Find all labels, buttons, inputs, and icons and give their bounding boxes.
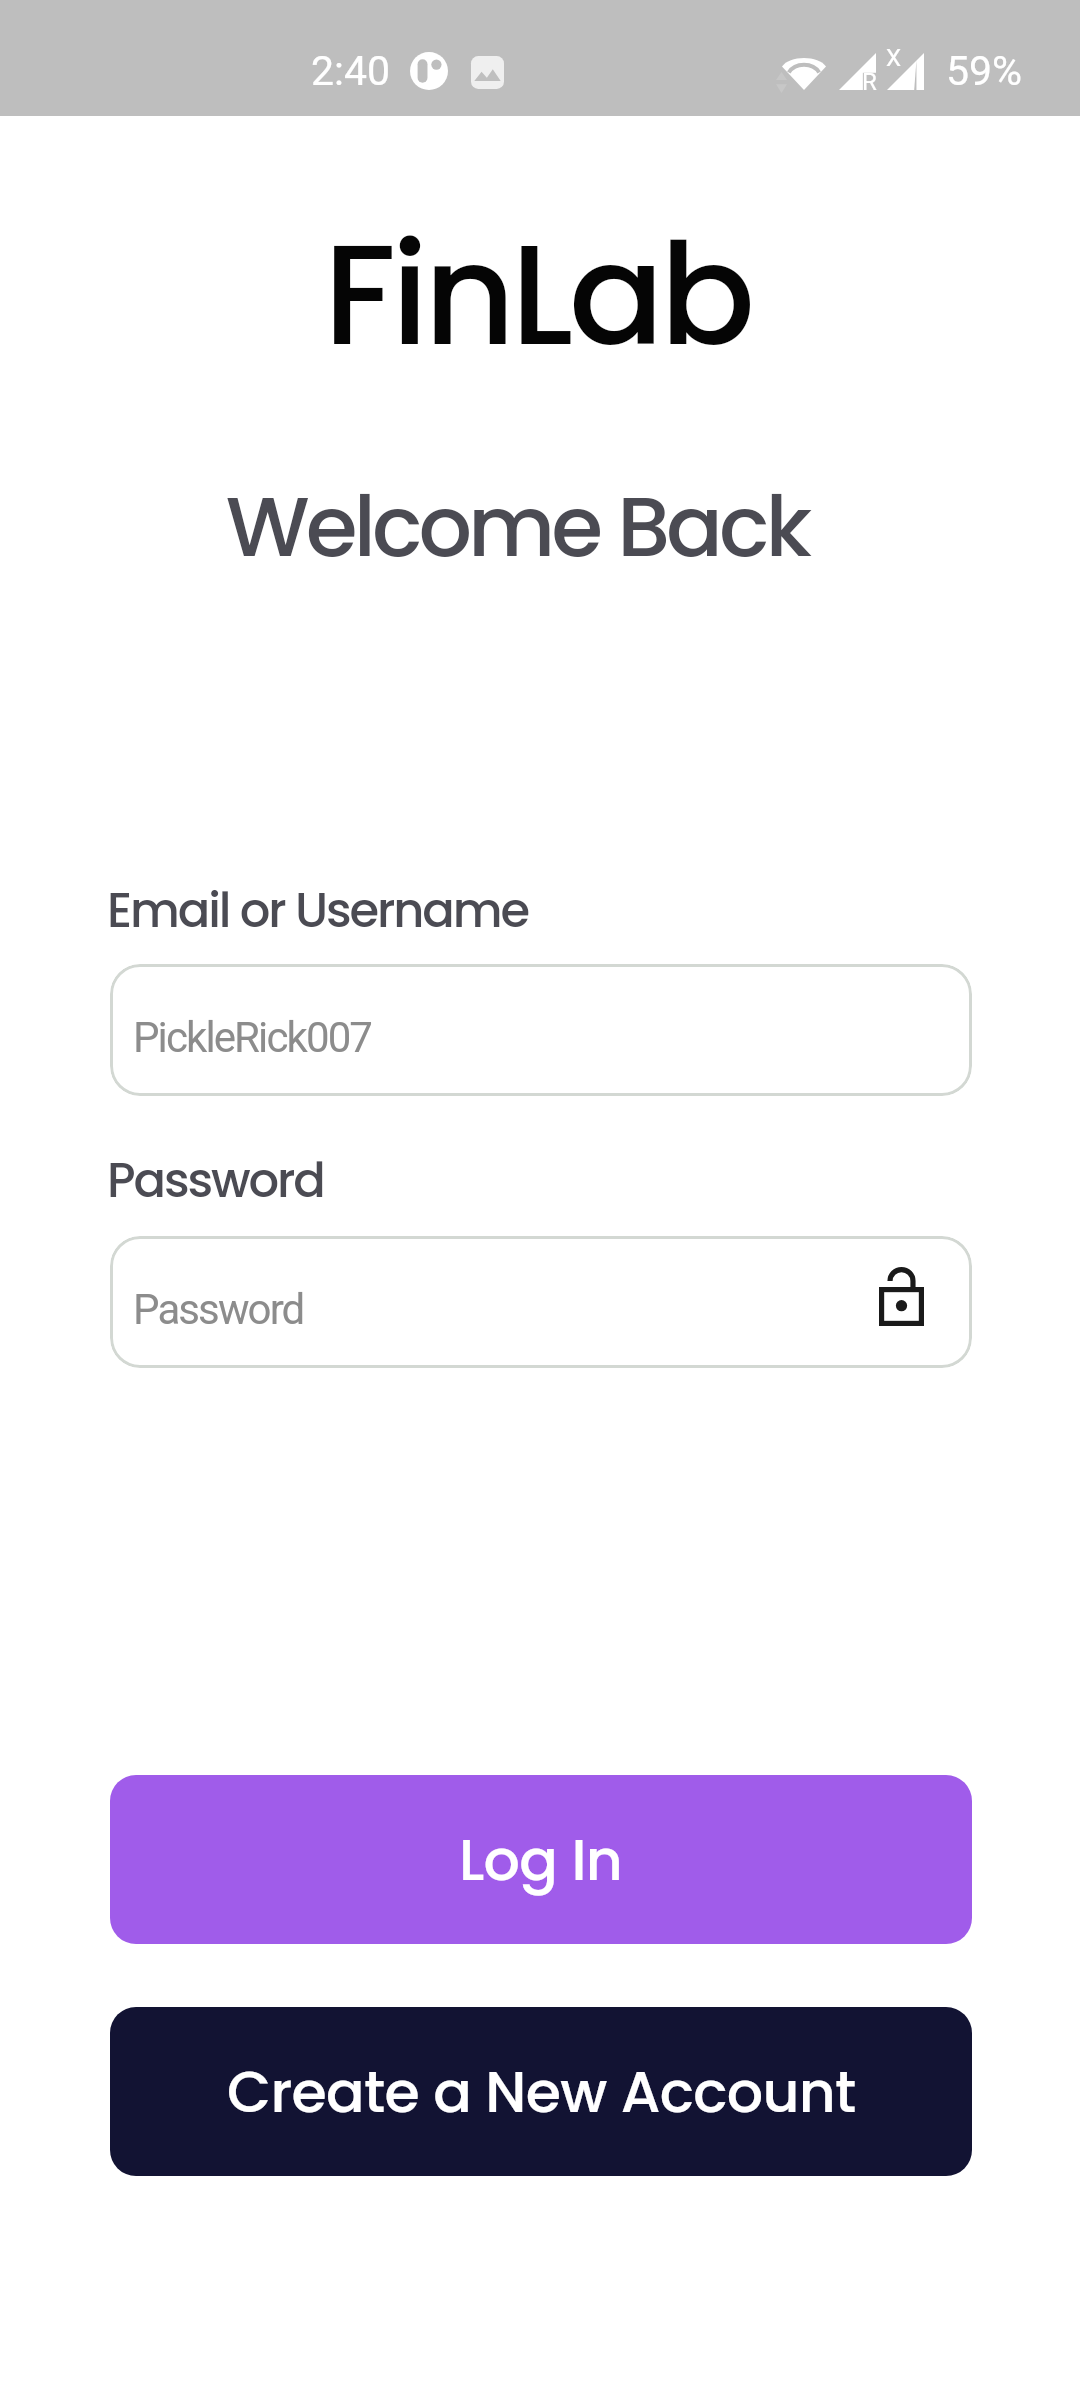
button[interactable]: Password — [110, 1236, 972, 1368]
staticText: FinLab — [0, 196, 1077, 393]
button[interactable]: Log In — [110, 1775, 972, 1944]
staticText: Email or Username — [107, 877, 529, 944]
staticText: 59% — [946, 47, 1023, 95]
staticText: R — [862, 68, 877, 96]
button[interactable]: Show password — [869, 1264, 933, 1328]
staticText: Welcome Back — [0, 468, 1057, 586]
staticText: Password — [107, 1147, 324, 1214]
staticText: 2:40 — [311, 47, 391, 95]
staticText: Create a New Account — [227, 2052, 856, 2132]
staticText: PickleRick007 — [133, 1013, 372, 1062]
button[interactable]: PickleRick007 — [110, 964, 972, 1096]
button[interactable]: Create a New Account — [110, 2007, 972, 2176]
staticText: X — [886, 44, 902, 72]
staticText: Log In — [459, 1820, 623, 1900]
staticText: Password — [133, 1285, 304, 1334]
